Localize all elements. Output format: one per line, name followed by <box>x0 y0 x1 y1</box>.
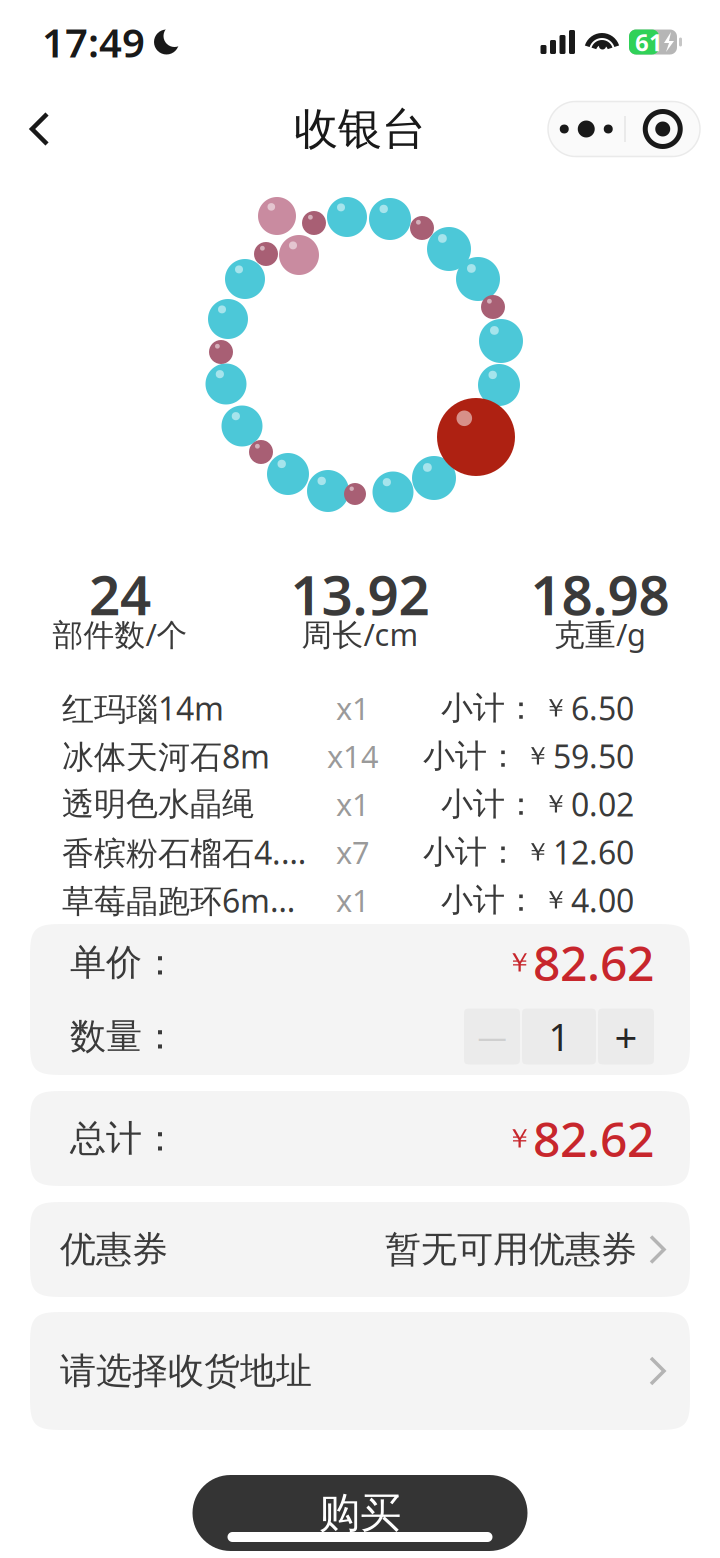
staticText: 小计： <box>441 688 537 728</box>
staticText: ￥ <box>525 740 550 771</box>
staticText: 61 <box>635 26 663 58</box>
staticText: 数量： <box>70 1014 178 1059</box>
button[interactable]: 优惠券 <box>30 1202 690 1297</box>
staticText: 13.92 <box>290 558 429 630</box>
staticText: x14 <box>327 736 379 776</box>
staticText: 请选择收货地址 <box>60 1349 312 1393</box>
staticText: 小计： <box>423 832 519 872</box>
staticText: 透明色水晶绳 <box>62 784 254 824</box>
staticText: 小计： <box>441 784 537 824</box>
staticText: 购买 <box>319 1488 401 1538</box>
staticText: ￥ <box>506 1122 533 1155</box>
button[interactable]: 购买 <box>192 1475 527 1551</box>
staticText: 冰体天河石8m <box>62 735 270 777</box>
staticText: 优惠券 <box>60 1227 168 1272</box>
staticText: 82.62 <box>533 1107 654 1170</box>
staticText: ￥ <box>543 788 568 819</box>
staticText: 香槟粉石榴石4.6m <box>62 830 308 873</box>
button[interactable]: Decrease quantity <box>464 1008 520 1064</box>
staticText: 周长/cm <box>301 614 418 654</box>
staticText: 总计： <box>70 1116 178 1161</box>
staticText: x1 <box>336 688 370 728</box>
staticText: x1 <box>336 784 370 824</box>
staticText: 17:49 <box>42 15 145 68</box>
staticText: 红玛瑙14m <box>62 687 224 729</box>
staticText: 克重/g <box>554 614 646 654</box>
staticText: 0.02 <box>571 783 634 825</box>
staticText: 小计： <box>441 880 537 920</box>
staticText: 4.00 <box>571 879 634 921</box>
staticText: 单价： <box>70 940 178 985</box>
staticText: 82.62 <box>533 931 654 994</box>
staticText: 草莓晶跑环6mS53 <box>62 878 308 921</box>
staticText: 1 <box>548 1012 569 1061</box>
button[interactable]: 请选择收货地址 <box>30 1312 690 1430</box>
staticText: 暂无可用优惠券 <box>385 1227 637 1272</box>
staticText: 6.50 <box>571 687 634 729</box>
staticText: 收银台 <box>294 102 426 156</box>
staticText: ￥ <box>543 692 568 723</box>
staticText: + <box>614 1010 637 1063</box>
staticText: 59.50 <box>553 735 634 777</box>
staticText: 部件数/个 <box>52 614 187 654</box>
staticText: x1 <box>336 880 370 920</box>
button[interactable]: Back <box>0 99 71 159</box>
staticText: 小计： <box>423 736 519 776</box>
button[interactable]: More <box>548 102 624 156</box>
staticText: x7 <box>336 832 370 872</box>
button[interactable]: Close <box>626 102 700 156</box>
staticText: ￥ <box>506 946 533 979</box>
staticText: ￥ <box>525 836 550 867</box>
staticText: 24 <box>89 558 151 630</box>
staticText: — <box>477 1017 506 1056</box>
staticText: 18.98 <box>530 558 669 630</box>
staticText: 12.60 <box>553 831 634 873</box>
button[interactable]: Increase quantity <box>598 1008 654 1064</box>
staticText: ￥ <box>543 884 568 915</box>
